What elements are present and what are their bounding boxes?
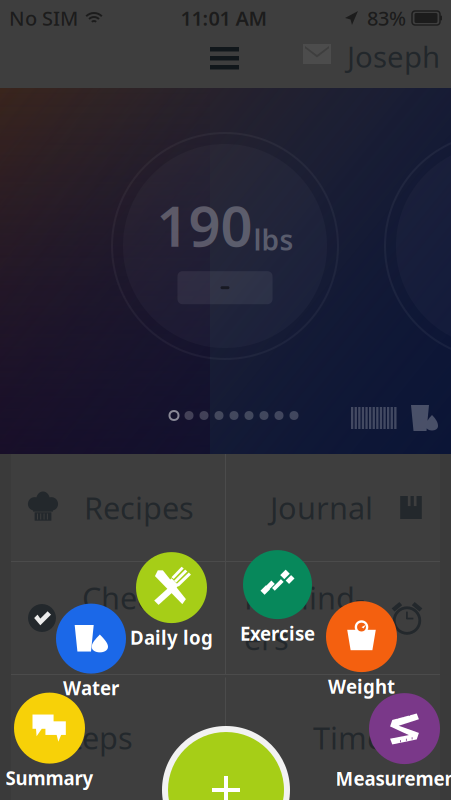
button[interactable]: Checklist (11, 562, 225, 674)
staticText: Water (63, 676, 119, 700)
button[interactable]: Menu (196, 33, 253, 84)
staticText: Daily log (130, 625, 213, 650)
button[interactable]: Steps (11, 677, 225, 797)
button[interactable]: Journal (226, 454, 440, 561)
staticText: Joseph (347, 37, 440, 76)
staticText: Summary (5, 766, 93, 790)
button[interactable]: Recipes (11, 454, 225, 561)
staticText: lbs (253, 221, 293, 258)
staticText: Reminders (244, 577, 365, 659)
staticText: 190 (156, 188, 252, 262)
button[interactable]: Reminders (226, 562, 440, 674)
staticText: Steps (54, 717, 133, 758)
staticText: No SIM (9, 5, 78, 31)
button[interactable]: Water (56, 604, 126, 700)
button[interactable]: Joseph (301, 40, 421, 84)
staticText: Exercise (240, 621, 315, 646)
button[interactable]: Measurements (335, 693, 451, 791)
staticText: 83% (367, 5, 406, 31)
staticText: 11:01 AM (180, 5, 267, 31)
staticText: Journal (270, 487, 373, 528)
button[interactable]: Daily log (130, 552, 213, 650)
button[interactable]: Weight (326, 601, 397, 699)
staticText: Weight (328, 674, 395, 699)
staticText: Recipes (84, 487, 194, 528)
staticText: Timer (313, 717, 397, 758)
button[interactable]: Exercise (240, 550, 315, 646)
staticText: Measurements (335, 766, 451, 791)
staticText: Checklist (82, 577, 194, 659)
button[interactable]: Add (162, 726, 290, 800)
button[interactable]: Summary (5, 693, 93, 790)
button[interactable]: Timer (226, 677, 440, 797)
